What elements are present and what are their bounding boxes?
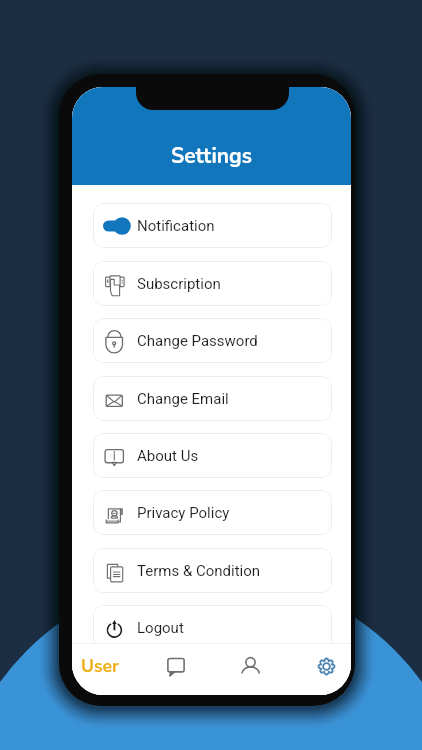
- button[interactable]: Settings: [282, 643, 351, 695]
- staticText: Notification: [137, 217, 215, 235]
- staticText: Subscription: [137, 275, 221, 293]
- staticText: About Us: [137, 447, 199, 465]
- button[interactable]: Notification: [93, 203, 332, 248]
- staticText: User: [81, 654, 119, 678]
- button[interactable]: Subscription: [93, 261, 332, 306]
- button[interactable]: Logout: [93, 605, 332, 643]
- staticText: Privacy Policy: [137, 504, 230, 522]
- staticText: Terms & Condition: [137, 562, 261, 580]
- button[interactable]: Change Password: [93, 318, 332, 363]
- staticText: Change Email: [137, 390, 229, 408]
- button[interactable]: User: [72, 643, 142, 695]
- staticText: Change Password: [137, 332, 258, 350]
- button[interactable]: Messages: [142, 643, 212, 695]
- staticText: Logout: [137, 619, 184, 637]
- button[interactable]: About Us: [93, 433, 332, 478]
- button[interactable]: Privacy Policy: [93, 490, 332, 535]
- button[interactable]: Change Email: [93, 376, 332, 421]
- staticText: Settings: [171, 142, 252, 171]
- button[interactable]: Terms & Condition: [93, 548, 332, 593]
- button[interactable]: Profile: [212, 643, 282, 695]
